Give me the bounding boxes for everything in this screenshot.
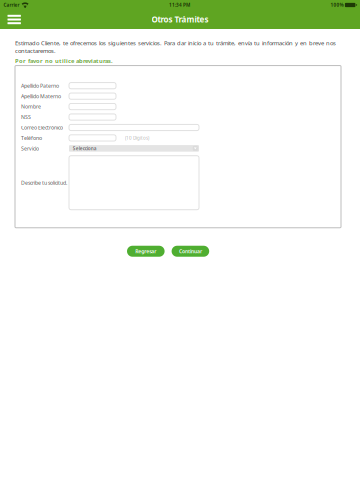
staticText: Apellido Materno — [21, 93, 61, 100]
button[interactable]: Regresar — [127, 246, 165, 257]
staticText: Otros Trámites — [151, 14, 208, 25]
staticText: 11:34 PM — [169, 2, 190, 8]
staticText: 100% — [330, 2, 343, 8]
staticText: Estimado Cliente, te ofrecemos los sigui… — [15, 39, 336, 55]
staticText: NSS — [21, 113, 31, 121]
staticText: Carrier — [3, 2, 19, 8]
button[interactable]: Continuar — [172, 246, 209, 257]
staticText: Continuar — [179, 248, 202, 255]
staticText: Selecciona — [73, 145, 97, 152]
staticText: Describe tu solicitud. — [21, 179, 67, 186]
staticText: Correo Electrónico — [21, 124, 63, 131]
staticText: Nombre — [21, 103, 41, 110]
staticText: Por favor no utilice abreviaturas. — [15, 57, 113, 65]
button[interactable]: Selecciona — [69, 145, 199, 152]
staticText: Servicio — [21, 145, 39, 152]
staticText: Regresar — [135, 248, 156, 255]
staticText: Apellido Paterno — [21, 82, 59, 89]
staticText: (10 Dígitos) — [125, 135, 149, 141]
staticText: Teléfono — [21, 134, 42, 141]
button[interactable]: Menu — [0, 10, 28, 29]
